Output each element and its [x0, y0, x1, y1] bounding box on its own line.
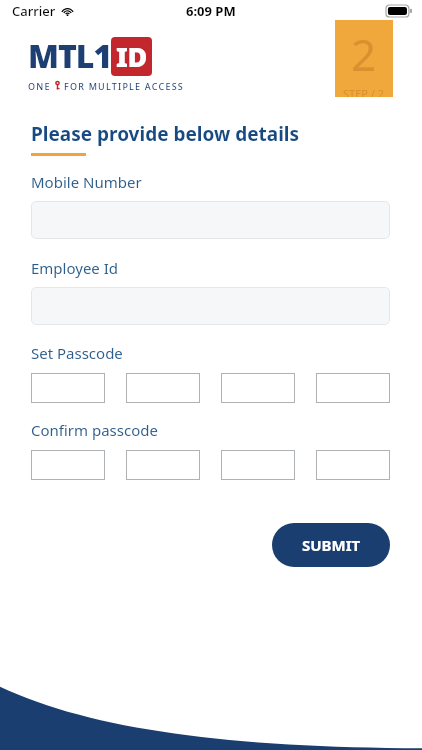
staticText: ONE — [28, 80, 51, 92]
button[interactable]: Passcode digit 2 — [126, 373, 200, 403]
staticText: Carrier — [12, 2, 56, 20]
staticText: Employee Id — [31, 258, 119, 278]
staticText: Confirm passcode — [31, 420, 158, 440]
staticText: FOR MULTIPLE ACCESS — [64, 80, 184, 92]
staticText: 6:09 PM — [186, 2, 236, 20]
button[interactable]: Passcode digit 3 — [221, 373, 295, 403]
button[interactable]: Passcode digit 4 — [316, 373, 390, 403]
button[interactable]: Passcode digit 1 — [31, 450, 105, 480]
button[interactable]: Passcode digit 4 — [316, 450, 390, 480]
staticText: SUBMIT — [302, 535, 361, 555]
staticText: ID — [116, 38, 147, 75]
staticText: MTL1 — [28, 34, 112, 78]
staticText: Mobile Number — [31, 172, 142, 192]
button[interactable]: Passcode digit 2 — [126, 450, 200, 480]
staticText: 2 — [351, 24, 377, 84]
button[interactable]: Passcode digit 3 — [221, 450, 295, 480]
button[interactable]: SUBMIT — [272, 523, 390, 567]
button[interactable]: Text input — [31, 201, 390, 239]
staticText: Set Passcode — [31, 343, 123, 363]
button[interactable]: Passcode digit 1 — [31, 373, 105, 403]
button[interactable]: Text input — [31, 287, 390, 325]
staticText: Please provide below details — [31, 121, 300, 147]
staticText: STEP / 2 — [343, 86, 385, 97]
